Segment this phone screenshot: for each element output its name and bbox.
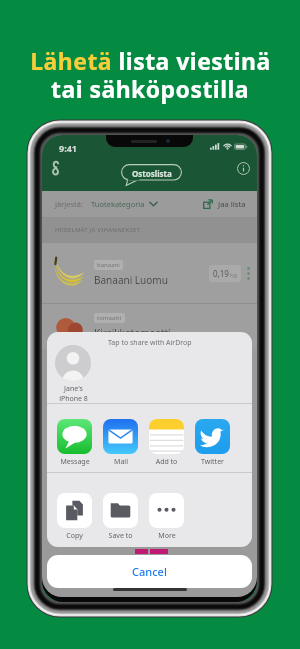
staticText: tai sähköpostilla [51, 73, 249, 104]
button[interactable]: Info [234, 159, 252, 177]
staticText: tomaatti [97, 314, 122, 322]
button[interactable]: Message [57, 419, 92, 467]
button[interactable]: Attach [45, 158, 65, 178]
button[interactable]: Copy [57, 493, 92, 541]
staticText: banaani [97, 261, 120, 269]
staticText: 0,19 [213, 268, 229, 279]
button[interactable]: Save to Files [103, 493, 138, 541]
staticText: Ostoslista [132, 168, 172, 179]
staticText: Mail [114, 457, 128, 467]
staticText: Jane's [64, 384, 83, 394]
button[interactable]: Mail [103, 419, 138, 467]
button[interactable]: Jaa lista [203, 199, 246, 209]
staticText: Add to notes [149, 457, 184, 467]
button[interactable]: Add to notes [149, 419, 184, 467]
button[interactable]: Twitter [195, 419, 230, 467]
staticText: kg [230, 271, 237, 279]
staticText: Twitter [201, 457, 224, 467]
button[interactable]: More [149, 493, 184, 541]
staticText: Kirsikkatomaatti [94, 326, 171, 340]
staticText: Cancel [132, 564, 167, 579]
staticText: Copy [66, 531, 83, 541]
staticText: Tuotekategoria [91, 199, 145, 209]
staticText: 9:41 [59, 142, 77, 154]
button[interactable]: Jane's [53, 345, 93, 404]
staticText: Save to Files [103, 531, 138, 541]
staticText: Message [60, 457, 90, 467]
button[interactable]: Tuotekategoria [91, 199, 158, 209]
staticText: More [158, 531, 176, 541]
staticText: Tap to share with AirDrop [108, 338, 192, 348]
staticText: Lähetä lista viestinä [30, 45, 271, 76]
staticText: HEDELMÄT JA VIHANNEKSET [55, 226, 141, 234]
button[interactable]: Ostoslista [121, 164, 182, 186]
staticText: iPhone 8 [59, 394, 88, 404]
button[interactable]: Cancel [47, 555, 252, 588]
staticText: Banaani Luomu [94, 273, 168, 287]
staticText: Järjestä: [55, 199, 84, 209]
staticText: Jaa lista [218, 199, 246, 209]
